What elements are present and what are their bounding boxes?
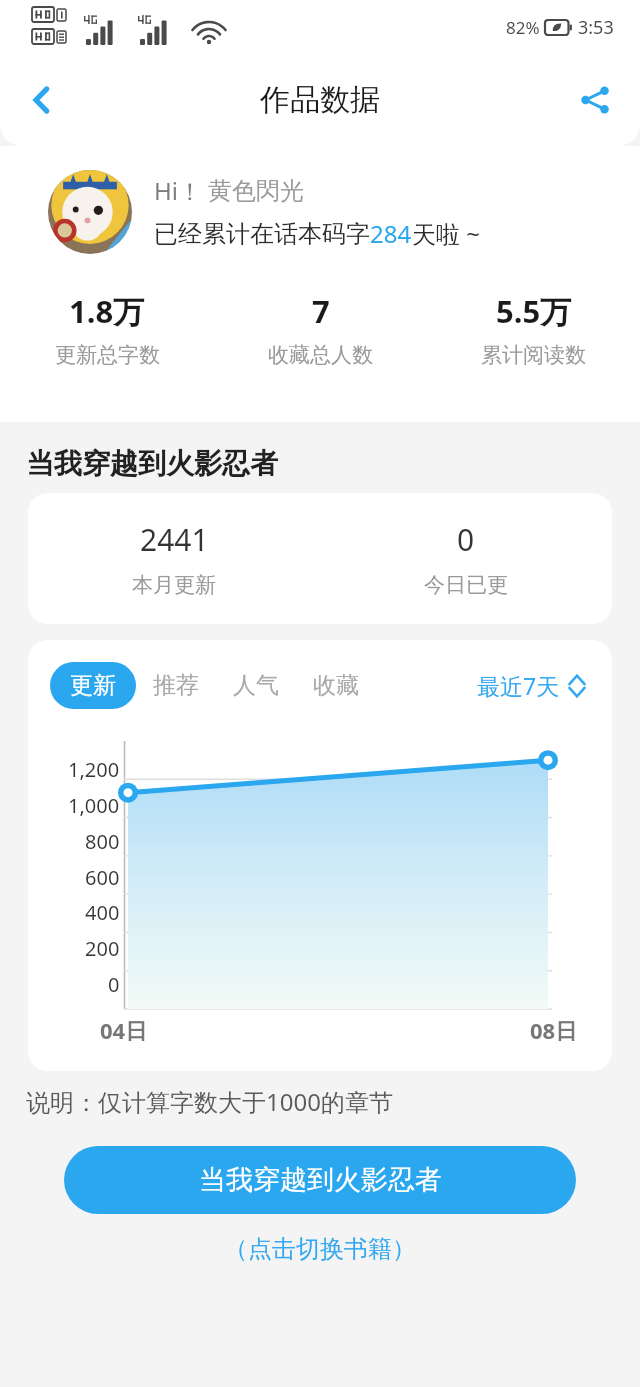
button[interactable]: Back xyxy=(10,68,74,132)
button[interactable]: 7 xyxy=(214,290,427,368)
button[interactable]: 0 xyxy=(320,519,612,598)
staticText: 7 xyxy=(312,290,330,332)
staticText: 今日已更 xyxy=(424,572,508,598)
staticText: 1,000 xyxy=(68,792,120,819)
staticText: 1,200 xyxy=(68,756,120,783)
staticText: 更新总字数 xyxy=(55,342,160,368)
staticText: 天啦 ~ xyxy=(412,217,480,250)
button[interactable]: 最近7天 xyxy=(473,666,590,705)
staticText: 最近7天 xyxy=(477,670,560,701)
button[interactable]: Share xyxy=(564,69,626,131)
staticText: 284 xyxy=(370,217,412,250)
staticText: 更新 xyxy=(70,671,116,700)
button[interactable]: 人气 xyxy=(216,662,296,709)
staticText: Hi！ xyxy=(154,174,202,207)
staticText: 推荐 xyxy=(153,671,199,700)
button[interactable]: 当我穿越到火影忍者 xyxy=(64,1146,576,1214)
staticText: 黄色閃光 xyxy=(208,176,304,206)
staticText: 82% xyxy=(506,16,540,39)
staticText: 收藏总人数 xyxy=(268,342,373,368)
button[interactable]: （点击切换书籍） xyxy=(210,1228,430,1270)
staticText: 本月更新 xyxy=(132,572,216,598)
staticText: 04日 xyxy=(100,1015,148,1045)
staticText: 0 xyxy=(457,519,475,560)
staticText: （点击切换书籍） xyxy=(224,1234,416,1264)
staticText: 600 xyxy=(85,864,120,891)
staticText: 200 xyxy=(85,935,120,962)
button[interactable]: 1.8万 xyxy=(0,290,214,368)
staticText: 当我穿越到火影忍者 xyxy=(199,1163,442,1197)
staticText: 0 xyxy=(108,971,120,998)
staticText: 累计阅读数 xyxy=(481,342,586,368)
staticText: 当我穿越到火影忍者 xyxy=(26,446,278,481)
staticText: 400 xyxy=(85,899,120,926)
button[interactable]: 更新 xyxy=(50,662,136,709)
button[interactable]: 收藏 xyxy=(296,662,376,709)
staticText: 2441 xyxy=(140,519,209,560)
staticText: 800 xyxy=(85,828,120,855)
button[interactable]: 5.5万 xyxy=(427,290,640,368)
button[interactable]: 推荐 xyxy=(136,662,216,709)
staticText: 作品数据 xyxy=(260,81,380,119)
staticText: 说明：仅计算字数大于1000的章节 xyxy=(26,1085,393,1118)
button[interactable]: 2441 xyxy=(28,519,320,598)
staticText: 08日 xyxy=(530,1015,578,1045)
staticText: 人气 xyxy=(233,671,279,700)
staticText: 3:53 xyxy=(578,15,614,40)
staticText: 收藏 xyxy=(313,671,359,700)
staticText: 1.8万 xyxy=(69,290,145,332)
button[interactable]: Hi！ xyxy=(48,170,616,254)
staticText: 5.5万 xyxy=(496,290,572,332)
staticText: 已经累计在话本码字 xyxy=(154,219,370,249)
